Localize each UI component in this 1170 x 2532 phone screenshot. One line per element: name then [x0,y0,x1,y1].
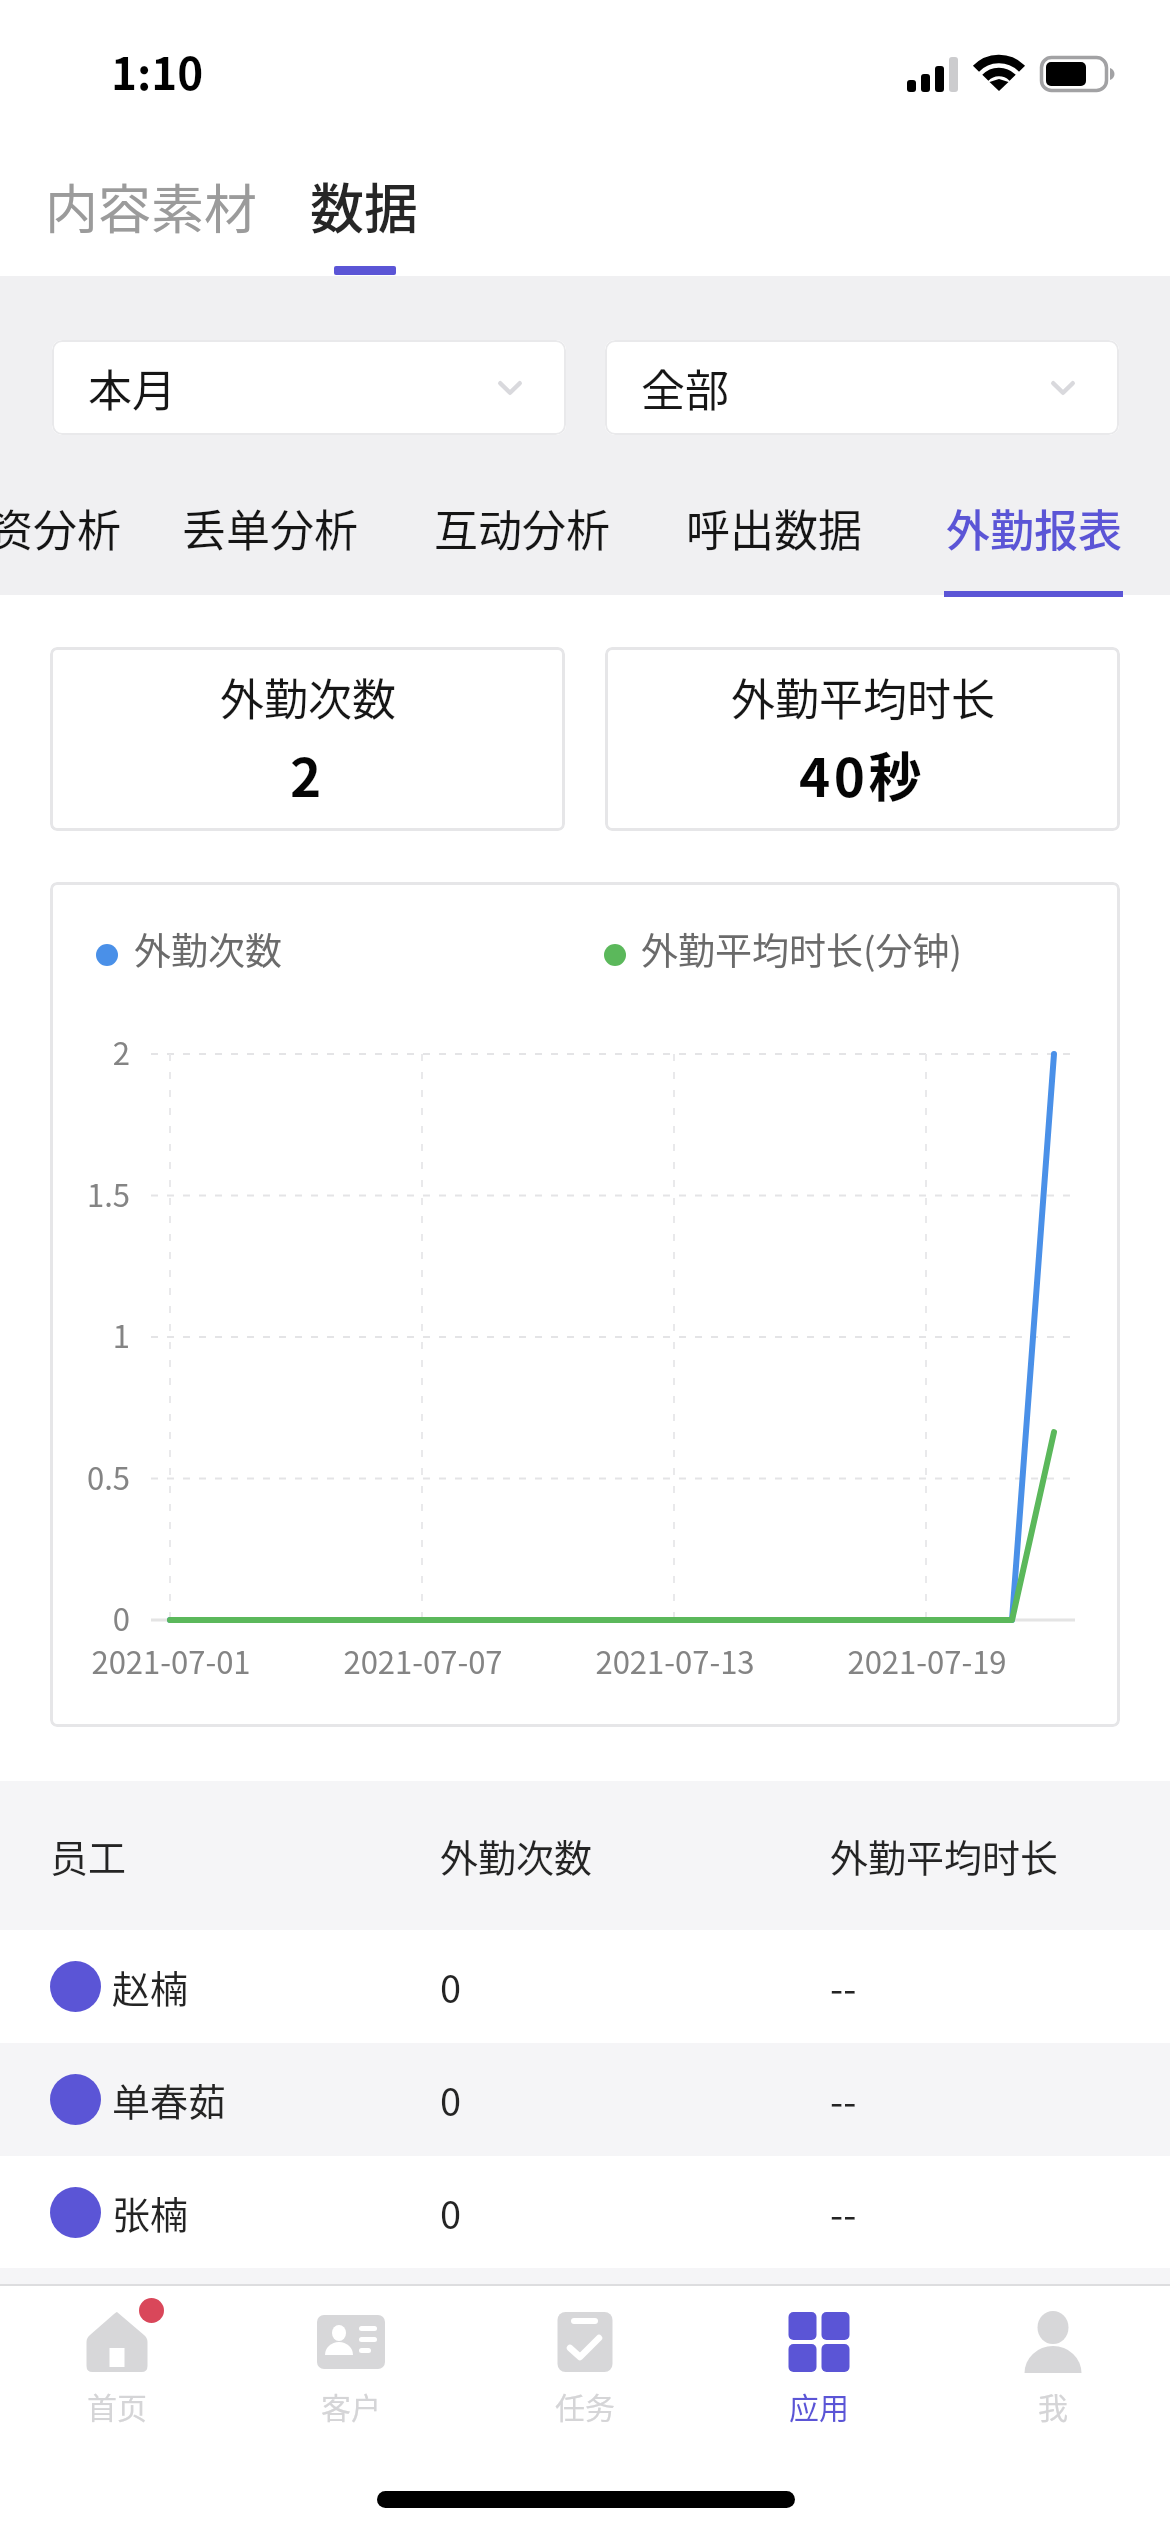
staticText: 呼出数据 [686,496,862,560]
staticText: 外勤次数 [220,665,396,729]
button[interactable]: 互动分析 [425,466,619,597]
staticText: 1.5 [50,1171,130,1216]
button[interactable]: 内容素材 [34,146,268,264]
other: Home [82,2306,152,2372]
staticText: 全部 [641,356,729,420]
staticText: 我 [1038,2384,1068,2427]
staticText: 2021-07-13 [550,1638,800,1683]
staticText: -- [830,1959,857,2014]
staticText: 外勤平均时长 [731,665,995,729]
other: Profile [1018,2306,1088,2372]
button[interactable]: 外勤次数 [50,647,565,831]
button[interactable]: Home [0,2286,234,2454]
other: Customers [316,2306,386,2372]
button[interactable]: Profile [936,2286,1170,2454]
staticText: 客户 [321,2384,381,2427]
button[interactable]: 本月 [52,340,566,435]
staticText: 丢单分析 [182,496,358,560]
staticText: 张楠 [112,2185,189,2240]
button[interactable]: Customers [234,2286,468,2454]
staticText: 1 [50,1312,130,1357]
staticText: 互动分析 [434,496,610,560]
staticText: 赵楠 [112,1959,189,2014]
staticText: 1:10 [111,39,204,103]
other: Tasks [550,2306,620,2372]
staticText: 0 [440,2072,830,2127]
button[interactable]: 数据 [286,146,442,264]
staticText: 2021-07-01 [50,1638,296,1683]
staticText: 外勤次数 [440,1828,830,1883]
staticText: 0 [50,1595,130,1640]
staticText: 2 [50,1029,130,1074]
button[interactable]: Apps [702,2286,936,2454]
staticText: 任务 [555,2384,615,2427]
staticText: 外勤报表 [946,496,1122,560]
staticText: 资分析 [0,496,121,560]
button[interactable]: 丢单分析 [173,466,367,597]
staticText: 0 [440,1959,830,2014]
staticText: 内容素材 [45,168,257,245]
button[interactable]: 外勤报表 [944,466,1123,597]
button[interactable]: 赵楠 [0,1930,1170,2043]
other: Apps [784,2306,854,2372]
staticText: 数据 [310,166,418,244]
button[interactable]: 全部 [605,340,1119,435]
staticText: 2021-07-07 [298,1638,548,1683]
button[interactable]: 呼出数据 [677,466,871,597]
staticText: -- [830,2185,857,2240]
button[interactable]: 单春茹 [0,2043,1170,2156]
staticText: 0 [440,2185,830,2240]
staticText: 外勤平均时长(分钟) [641,922,963,976]
staticText: 0.5 [50,1454,130,1499]
staticText: 首页 [87,2384,147,2427]
button[interactable]: Tasks [468,2286,702,2454]
staticText: 外勤次数 [134,922,282,976]
staticText: 单春茹 [112,2072,227,2127]
staticText: 2021-07-19 [802,1638,1052,1683]
staticText: 2 [290,736,325,813]
staticText: 员工 [50,1828,440,1883]
button[interactable]: 资分析 [0,466,131,597]
staticText: 本月 [88,356,176,420]
button[interactable]: 张楠 [0,2156,1170,2269]
staticText: 外勤平均时长 [830,1828,1059,1883]
staticText: -- [830,2072,857,2127]
staticText: 应用 [789,2384,849,2427]
button[interactable]: 外勤平均时长 [605,647,1120,831]
staticText: 40秒 [799,736,926,813]
